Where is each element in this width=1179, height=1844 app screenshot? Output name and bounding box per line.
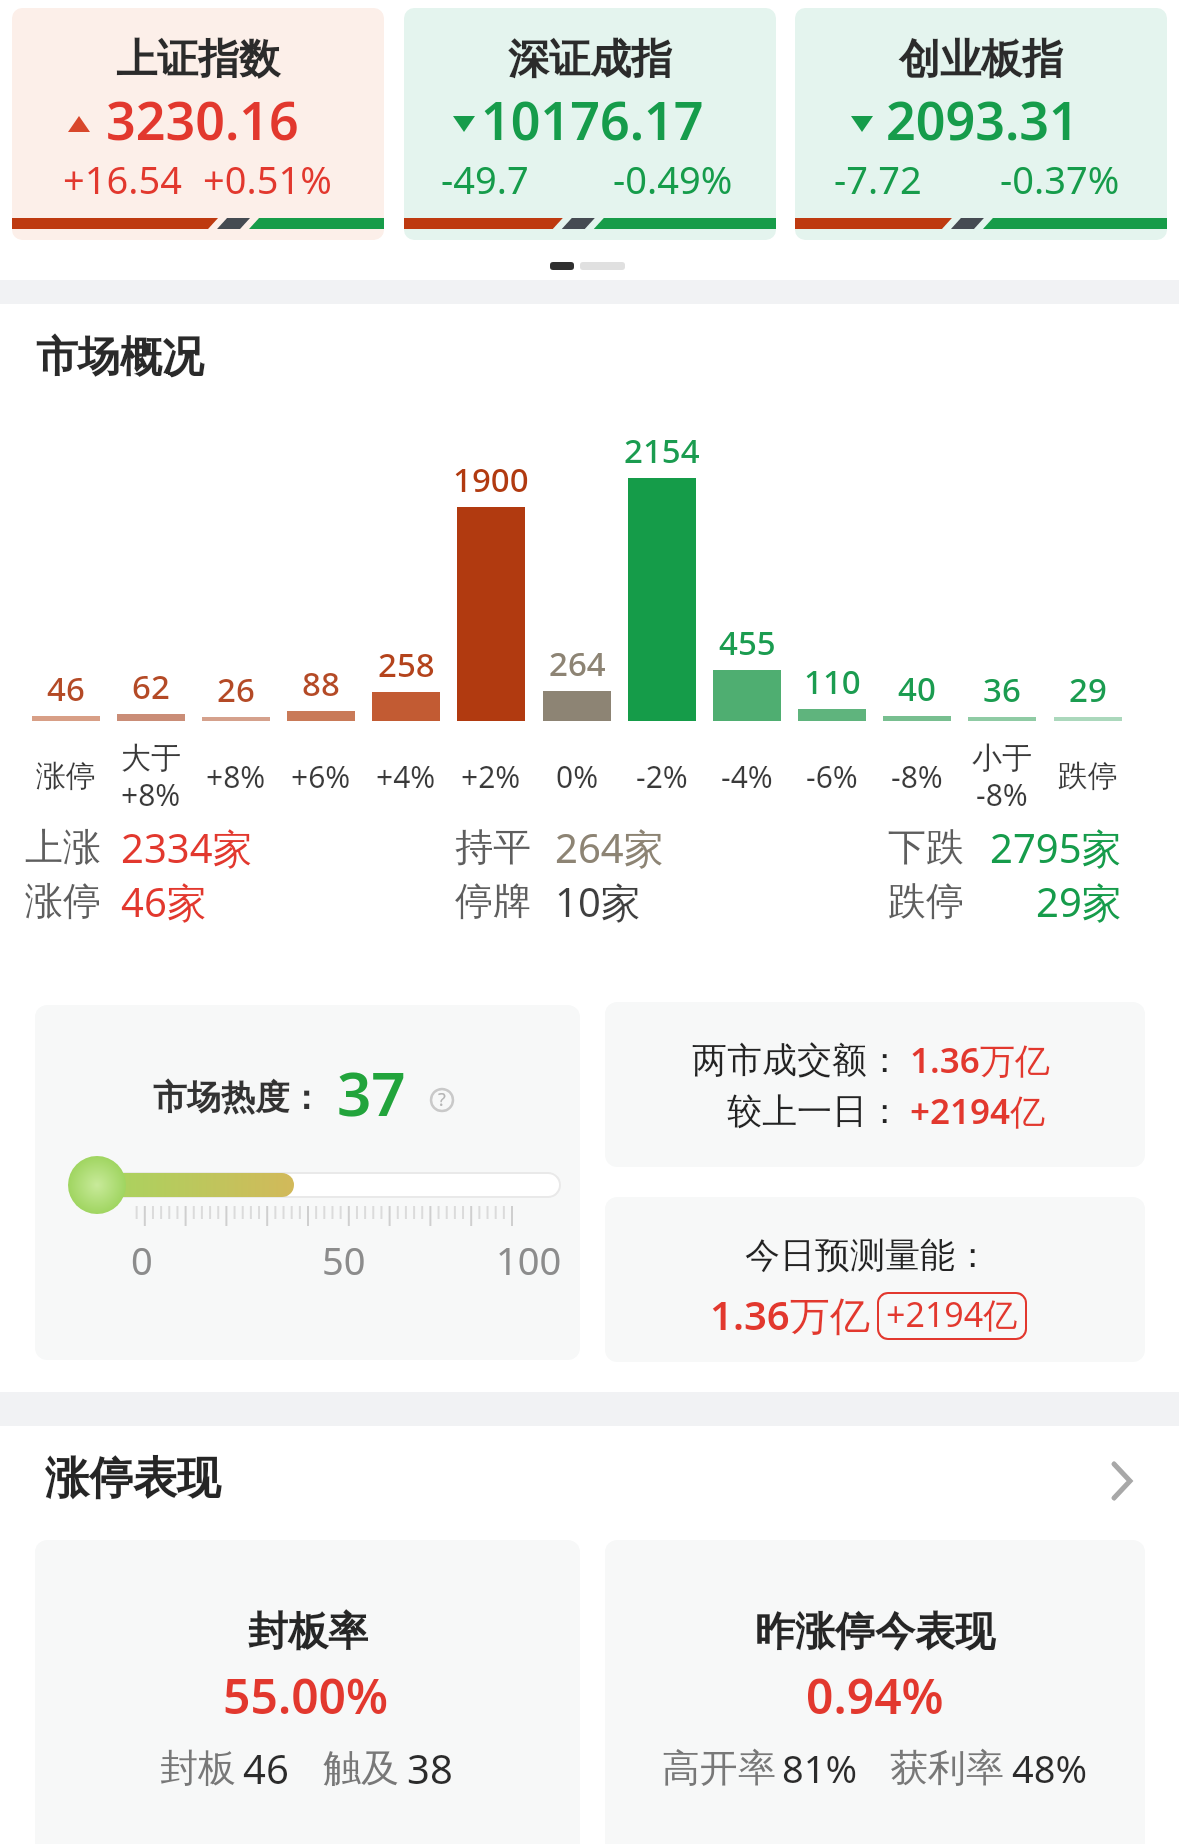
- staticText: 264家: [555, 820, 664, 875]
- staticText: 今日预测量能：: [745, 1233, 990, 1277]
- staticText: 涨停表现: [45, 1451, 221, 1506]
- staticText: 高开率: [662, 1744, 776, 1792]
- staticText: 29: [1069, 667, 1107, 712]
- staticText: 市场热度：: [153, 1076, 323, 1119]
- staticText: 1900: [453, 457, 529, 502]
- staticText: 1.36万亿: [910, 1036, 1050, 1084]
- staticText: 触及: [323, 1744, 399, 1792]
- staticText: 市场概况: [36, 331, 204, 384]
- staticText: 50: [322, 1234, 366, 1286]
- staticText: +6%: [291, 756, 351, 797]
- staticText: -2%: [636, 756, 688, 797]
- staticText: 48%: [1012, 1742, 1088, 1794]
- button[interactable]: [605, 1002, 1145, 1167]
- button[interactable]: [404, 8, 776, 240]
- staticText: 46家: [121, 874, 207, 929]
- staticText: 0: [131, 1234, 153, 1286]
- staticText: 跌停: [888, 877, 964, 925]
- staticText: +2%: [461, 756, 521, 797]
- staticText: 1.36万亿: [710, 1287, 870, 1342]
- staticText: ?: [438, 1087, 446, 1112]
- staticText: 37: [337, 1052, 406, 1134]
- staticText: -8%: [976, 774, 1028, 815]
- staticText: 264: [549, 641, 606, 686]
- staticText: 88: [302, 661, 340, 706]
- staticText: 2334家: [121, 820, 253, 875]
- staticText: +16.54: [63, 153, 182, 205]
- staticText: 深证成指: [508, 34, 672, 86]
- staticText: 455: [719, 620, 776, 665]
- staticText: 2795家: [990, 820, 1122, 875]
- staticText: 29家: [1036, 874, 1122, 929]
- staticText: 46: [47, 666, 85, 711]
- staticText: 下跌: [888, 823, 964, 871]
- staticText: 昨涨停今表现: [755, 1606, 995, 1656]
- button[interactable]: [795, 8, 1167, 240]
- staticText: 创业板指: [899, 34, 1063, 86]
- staticText: +4%: [376, 756, 436, 797]
- button[interactable]: [12, 8, 384, 240]
- staticText: 10家: [555, 874, 641, 929]
- staticText: 上证指数: [116, 34, 280, 86]
- button[interactable]: [0, 1440, 1179, 1524]
- staticText: 0%: [556, 756, 599, 797]
- staticText: 55.00%: [223, 1663, 389, 1728]
- staticText: 2154: [624, 428, 700, 473]
- staticText: +0.51%: [203, 153, 332, 205]
- staticText: 涨停: [36, 757, 96, 795]
- staticText: 上涨: [25, 823, 101, 871]
- staticText: -7.72: [834, 153, 922, 205]
- staticText: 较上一日：: [727, 1089, 902, 1133]
- button[interactable]: [605, 1540, 1145, 1844]
- staticText: 跌停: [1058, 757, 1118, 795]
- staticText: 46: [243, 1741, 289, 1795]
- staticText: +8%: [206, 756, 266, 797]
- staticText: -0.37%: [1000, 153, 1120, 205]
- staticText: 小于: [972, 739, 1032, 777]
- staticText: -6%: [806, 756, 858, 797]
- staticText: 100: [496, 1234, 562, 1286]
- staticText: 获利率: [890, 1744, 1004, 1792]
- staticText: 10176.17: [481, 84, 704, 155]
- staticText: 停牌: [455, 877, 531, 925]
- staticText: +2194亿: [886, 1291, 1018, 1337]
- button[interactable]: [605, 1197, 1145, 1362]
- staticText: +8%: [121, 774, 181, 815]
- staticText: 81%: [782, 1742, 858, 1794]
- staticText: 封板: [160, 1744, 236, 1792]
- button[interactable]: [35, 1005, 580, 1360]
- button[interactable]: [35, 1540, 580, 1844]
- staticText: 36: [983, 667, 1021, 712]
- staticText: -49.7: [441, 153, 529, 205]
- staticText: -0.49%: [613, 153, 733, 205]
- staticText: -8%: [891, 756, 943, 797]
- staticText: 两市成交额：: [692, 1038, 902, 1082]
- staticText: 封板率: [248, 1606, 368, 1656]
- staticText: 2093.31: [886, 84, 1079, 155]
- staticText: 40: [898, 666, 936, 711]
- staticText: 258: [378, 642, 435, 687]
- staticText: +2194亿: [910, 1087, 1046, 1135]
- staticText: 3230.16: [106, 84, 299, 155]
- staticText: 38: [407, 1741, 453, 1795]
- staticText: 62: [132, 664, 170, 709]
- staticText: 110: [804, 659, 861, 704]
- staticText: 0.94%: [806, 1663, 944, 1728]
- staticText: 涨停: [25, 877, 101, 925]
- staticText: -4%: [721, 756, 773, 797]
- staticText: 大于: [121, 739, 181, 777]
- staticText: 持平: [455, 823, 531, 871]
- staticText: 26: [217, 667, 255, 712]
